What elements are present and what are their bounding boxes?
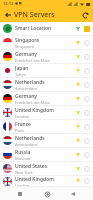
staticText: Frankfurt am Main <box>15 100 50 105</box>
staticText: Netherlands <box>15 79 45 86</box>
button[interactable]: Germany <box>0 92 93 105</box>
staticText: Tokyo <box>15 72 26 77</box>
staticText: Netherlands <box>15 135 45 142</box>
staticText: Amsterdam <box>15 142 37 147</box>
button[interactable]: Russia <box>0 148 93 161</box>
staticText: Smart Location <box>15 25 52 32</box>
staticText: Paris <box>15 128 25 133</box>
button[interactable]: Home <box>41 188 53 200</box>
staticText: Russia <box>15 149 31 156</box>
button[interactable]: United States <box>0 162 93 175</box>
staticText: Germany <box>15 93 37 100</box>
button[interactable]: Select United States <box>84 166 90 172</box>
button[interactable]: Selected <box>84 26 90 32</box>
staticText: Singapore <box>15 37 40 44</box>
staticText: Germany <box>15 51 37 58</box>
staticText: France <box>15 121 31 128</box>
button[interactable]: Select Netherlands <box>84 82 90 88</box>
staticText: London <box>15 114 30 119</box>
staticText: Singapore <box>15 44 35 49</box>
button[interactable]: Japan <box>0 64 93 77</box>
staticText: Amsterdam <box>15 86 37 91</box>
button[interactable]: United Kingdom <box>0 106 93 119</box>
button[interactable]: Select Japan <box>84 68 90 74</box>
button[interactable]: Select Singapore <box>84 40 90 46</box>
button[interactable]: Netherlands <box>0 78 93 91</box>
button[interactable]: United Kingdom <box>0 176 93 186</box>
button[interactable]: Select Germany <box>84 54 90 60</box>
button[interactable]: Select Netherlands <box>84 138 90 144</box>
staticText: London <box>15 183 30 186</box>
button[interactable]: Refresh <box>79 9 91 21</box>
button[interactable]: Netherlands <box>0 134 93 147</box>
button[interactable]: Smart Location <box>0 22 93 35</box>
staticText: United Kingdom <box>15 176 54 183</box>
button[interactable]: Select Germany <box>84 96 90 102</box>
staticText: United Kingdom <box>15 107 54 114</box>
button[interactable]: Recents <box>67 188 79 200</box>
button[interactable]: Back <box>14 188 26 200</box>
button[interactable]: Germany <box>0 50 93 63</box>
button[interactable]: Select France <box>84 124 90 130</box>
button[interactable]: Back <box>2 9 13 20</box>
staticText: VPN Servers <box>14 10 55 20</box>
button[interactable]: France <box>0 120 93 133</box>
staticText: 12:13 <box>3 1 14 6</box>
staticText: United States <box>15 163 48 170</box>
staticText: Moscow <box>15 156 31 161</box>
staticText: Frankfurt am Main <box>15 58 50 63</box>
staticText: Japan <box>15 65 29 72</box>
button[interactable]: Select Russia <box>84 152 90 158</box>
button[interactable]: Singapore <box>0 36 93 49</box>
button[interactable]: Select United Kingdom <box>84 110 90 116</box>
button[interactable]: Select United Kingdom <box>84 178 90 184</box>
staticText: New York <box>15 170 33 175</box>
